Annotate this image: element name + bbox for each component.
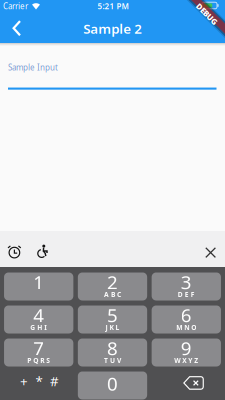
button[interactable]: 6 <box>152 305 221 333</box>
staticText: Sample 2 <box>83 20 142 37</box>
staticText: # <box>50 372 59 390</box>
staticText: * <box>35 372 42 390</box>
staticText: P Q R S <box>27 356 50 365</box>
staticText: M N O <box>176 323 196 332</box>
button[interactable] <box>30 238 58 266</box>
button[interactable]: 7 <box>4 338 73 366</box>
staticText: 3 <box>181 270 192 294</box>
staticText: J K L <box>105 323 119 332</box>
staticText: 1 <box>33 270 44 294</box>
button[interactable] <box>152 371 221 399</box>
staticText: DEBUG <box>193 9 220 19</box>
button[interactable]: 3 <box>152 272 221 300</box>
button[interactable]: 9 <box>152 338 221 366</box>
staticText: 4 <box>33 303 44 327</box>
staticText: A B C <box>104 290 121 299</box>
button[interactable] <box>0 238 28 266</box>
button[interactable]: 5 <box>78 305 147 333</box>
button[interactable]: 8 <box>78 338 147 366</box>
staticText: 6 <box>181 303 192 327</box>
button[interactable]: + <box>4 371 73 399</box>
button[interactable]: 1 <box>4 272 73 300</box>
button[interactable]: 0 <box>78 371 147 399</box>
staticText: D E F <box>178 290 195 299</box>
button[interactable] <box>197 238 225 266</box>
staticText: 5:21 PM <box>97 1 128 11</box>
staticText: Sample Input <box>8 62 58 73</box>
staticText: 5 <box>107 303 118 327</box>
button[interactable] <box>1 13 31 44</box>
staticText: 7 <box>33 336 44 360</box>
staticText: 8 <box>107 336 118 360</box>
staticText: T U V <box>104 356 121 365</box>
staticText: G H I <box>30 323 47 332</box>
staticText: 0 <box>107 371 118 396</box>
staticText: + <box>20 372 28 390</box>
staticText: 9 <box>181 336 192 360</box>
button[interactable]: 2 <box>78 272 147 300</box>
staticText: W X Y Z <box>174 356 198 365</box>
staticText: 2 <box>107 270 118 294</box>
staticText: Carrier <box>3 1 28 11</box>
button[interactable]: 4 <box>4 305 73 333</box>
